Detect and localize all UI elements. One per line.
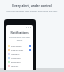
staticText: Reminders [11, 61, 21, 64]
button[interactable]: Mentions [6, 52, 33, 56]
button[interactable]: Daily digest [6, 44, 33, 48]
staticText: Comments [11, 57, 21, 60]
staticText: Daily digest [11, 45, 22, 48]
button[interactable]: Reminders [6, 60, 33, 64]
button[interactable]: Security [6, 64, 33, 68]
staticText: Notifications [6, 31, 33, 35]
button[interactable]: Product news [6, 48, 33, 52]
staticText: Pick the updates that matter and mute th… [6, 10, 58, 13]
staticText: Product news [11, 49, 24, 52]
staticText: Mentions [11, 53, 20, 56]
staticText: Security [11, 65, 19, 68]
staticText: Every alert, under control [12, 4, 52, 8]
button[interactable]: Comments [6, 56, 33, 60]
staticText: Choose what you hear about [6, 36, 33, 42]
